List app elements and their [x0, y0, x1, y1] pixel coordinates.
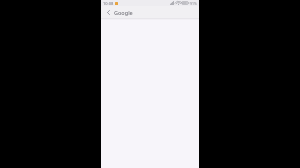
staticText: Google — [114, 9, 133, 16]
staticText: 10:08 — [103, 1, 114, 6]
staticText: 91% — [190, 1, 197, 6]
button[interactable]: Navigate up — [103, 7, 113, 17]
